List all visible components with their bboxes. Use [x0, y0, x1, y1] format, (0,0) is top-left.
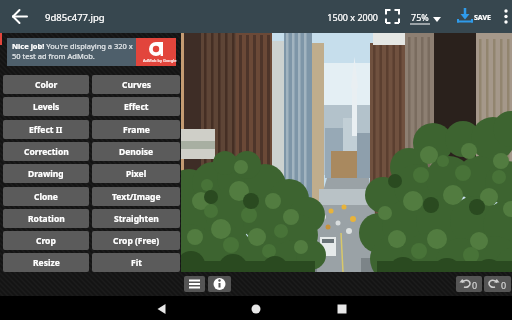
button[interactable]: Frame [92, 120, 180, 139]
button[interactable]: Text/Image [92, 187, 180, 206]
button[interactable]: Effect II [3, 120, 89, 139]
staticText: Rotation [28, 213, 65, 225]
button[interactable]: SAVE [455, 4, 495, 30]
button[interactable]: Clone [3, 187, 89, 206]
button[interactable]: Pixel [92, 164, 180, 183]
staticText: 1500 x 2000 [324, 11, 378, 25]
button[interactable]: Curves [92, 75, 180, 94]
button[interactable]: Correction [3, 142, 89, 161]
staticText: Fit [131, 257, 142, 269]
staticText: Text/Image [112, 191, 161, 203]
button[interactable]: 75% [409, 5, 447, 29]
button[interactable]: Effect [92, 97, 180, 116]
staticText: 0 [472, 279, 478, 291]
button[interactable] [246, 298, 266, 318]
button[interactable]: Crop (Free) [92, 231, 180, 250]
button[interactable]: Resize [3, 253, 89, 272]
button[interactable]: Nice job! You're displaying a 320 x 50 t… [7, 38, 176, 66]
button[interactable]: Crop [3, 231, 89, 250]
staticText: Nice job! You're displaying a 320 x 50 t… [12, 41, 134, 65]
button[interactable] [208, 276, 231, 292]
staticText: Drawing [28, 168, 64, 180]
staticText: SAVE [474, 13, 491, 23]
button[interactable]: Levels [3, 97, 89, 116]
button[interactable] [383, 7, 402, 26]
staticText: AdMob by Google [143, 58, 177, 63]
staticText: Crop [36, 235, 56, 247]
staticText: 0 [501, 279, 507, 291]
button[interactable]: 0 [484, 276, 511, 292]
button[interactable] [332, 298, 352, 318]
staticText: Straighten [114, 213, 159, 225]
button[interactable]: Rotation [3, 209, 89, 228]
button[interactable] [6, 2, 34, 30]
staticText: Crop (Free) [113, 235, 160, 247]
staticText: Pixel [126, 168, 147, 180]
staticText: Correction [24, 146, 69, 158]
button[interactable]: Denoise [92, 142, 180, 161]
staticText: Resize [33, 257, 60, 269]
button[interactable] [152, 298, 172, 318]
staticText: Color [35, 79, 58, 91]
button[interactable]: Fit [92, 253, 180, 272]
button[interactable]: Straighten [92, 209, 180, 228]
staticText: 9d85c477.jpg [45, 11, 105, 24]
staticText: Clone [34, 191, 58, 203]
button[interactable]: Color [3, 75, 89, 94]
button[interactable] [498, 4, 512, 30]
button[interactable]: Drawing [3, 164, 89, 183]
staticText: Denoise [119, 146, 154, 158]
staticText: Effect II [29, 124, 63, 136]
staticText: Effect [124, 101, 149, 113]
staticText: Levels [33, 101, 60, 113]
button[interactable] [184, 276, 205, 292]
staticText: Curves [122, 79, 151, 91]
staticText: Frame [123, 124, 150, 136]
button[interactable]: 0 [456, 276, 482, 292]
staticText: 75% [411, 11, 429, 23]
